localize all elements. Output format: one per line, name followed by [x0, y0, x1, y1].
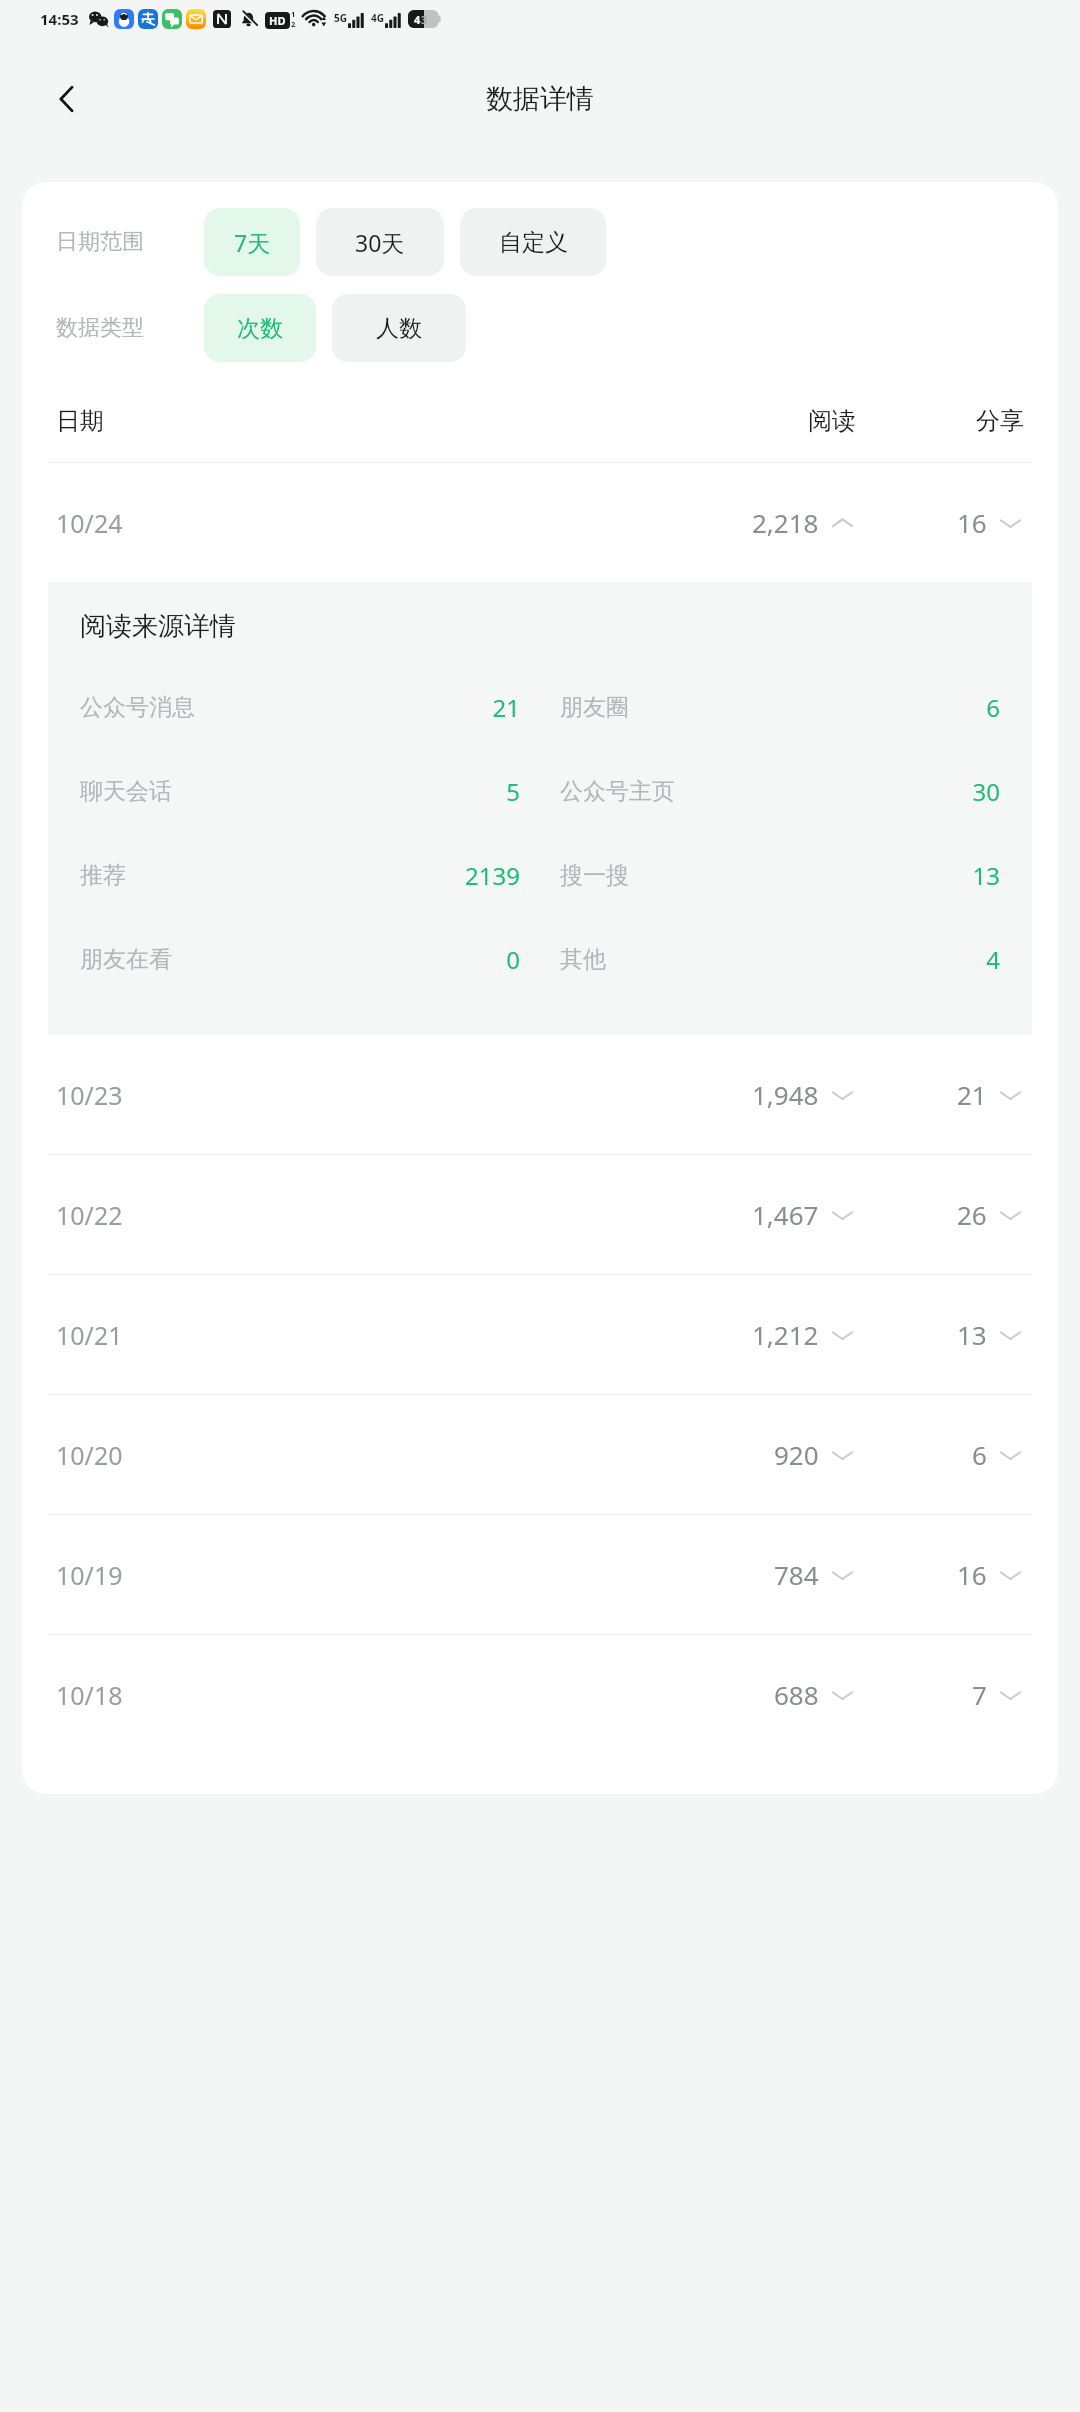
- staticText: 6: [972, 1437, 987, 1472]
- staticText: 分享: [856, 406, 1024, 436]
- staticText: 自定义: [499, 228, 568, 257]
- staticText: 阅读: [644, 406, 856, 436]
- staticText: 1,948: [752, 1077, 819, 1112]
- staticText: 30天: [355, 227, 405, 258]
- staticText: 16: [957, 1557, 987, 1592]
- staticText: 次数: [237, 314, 283, 343]
- staticText: 搜一搜: [560, 861, 900, 890]
- staticText: 10/21: [56, 1318, 644, 1352]
- button[interactable]: 次数: [204, 294, 316, 362]
- staticText: 14:53: [40, 9, 79, 29]
- staticText: 16: [957, 505, 987, 540]
- staticText: 2,218: [752, 505, 819, 540]
- staticText: 阅读来源详情: [80, 610, 236, 643]
- staticText: 日期: [56, 406, 644, 436]
- staticText: 4: [900, 943, 1000, 976]
- staticText: 聊天会话: [80, 777, 402, 806]
- button[interactable]: 10/21: [22, 1275, 1058, 1394]
- staticText: 人数: [376, 314, 422, 343]
- staticText: 4: [414, 12, 421, 27]
- staticText: 5: [402, 775, 520, 808]
- button[interactable]: 10/18: [22, 1635, 1058, 1754]
- button[interactable]: 10/19: [22, 1515, 1058, 1634]
- staticText: 21: [957, 1077, 987, 1112]
- staticText: 其他: [560, 945, 900, 974]
- staticText: 10/24: [56, 506, 644, 540]
- staticText: 1,212: [752, 1317, 819, 1352]
- staticText: 公众号主页: [560, 777, 900, 806]
- staticText: 数据详情: [486, 82, 594, 116]
- staticText: 朋友圈: [560, 693, 900, 722]
- staticText: 日期范围: [56, 228, 144, 256]
- staticText: 公众号消息: [80, 693, 402, 722]
- staticText: 30: [900, 775, 1000, 808]
- staticText: 4G: [371, 11, 384, 25]
- staticText: 2: [291, 19, 296, 29]
- button[interactable]: 人数: [332, 294, 466, 362]
- button[interactable]: 10/20: [22, 1395, 1058, 1514]
- staticText: HD: [269, 13, 286, 28]
- staticText: 688: [774, 1677, 819, 1712]
- button[interactable]: 自定义: [460, 208, 606, 276]
- staticText: 920: [774, 1437, 819, 1472]
- button[interactable]: 30天: [316, 208, 444, 276]
- staticText: 10/19: [56, 1558, 644, 1592]
- staticText: 1,467: [752, 1197, 819, 1232]
- button[interactable]: 10/22: [22, 1155, 1058, 1274]
- button[interactable]: 7天: [204, 208, 300, 276]
- staticText: 3: [421, 12, 428, 27]
- staticText: 7: [972, 1677, 987, 1712]
- button[interactable]: 10/23: [22, 1035, 1058, 1154]
- staticText: 784: [774, 1557, 819, 1592]
- staticText: 10/22: [56, 1198, 644, 1232]
- button[interactable]: 10/24: [22, 463, 1058, 582]
- staticText: 推荐: [80, 861, 402, 890]
- staticText: 13: [957, 1317, 987, 1352]
- staticText: 10/23: [56, 1078, 644, 1112]
- staticText: 朋友在看: [80, 945, 402, 974]
- staticText: 0: [402, 943, 520, 976]
- staticText: 21: [402, 691, 520, 724]
- staticText: 2139: [402, 859, 520, 892]
- staticText: 10/20: [56, 1438, 644, 1472]
- staticText: 10/18: [56, 1678, 644, 1712]
- staticText: 5G: [334, 11, 347, 25]
- staticText: 数据类型: [56, 314, 144, 342]
- staticText: 7天: [234, 227, 271, 258]
- button[interactable]: Back: [34, 66, 100, 132]
- staticText: 6: [900, 691, 1000, 724]
- staticText: 26: [957, 1197, 987, 1232]
- staticText: 13: [900, 859, 1000, 892]
- staticText: 1: [291, 9, 296, 19]
